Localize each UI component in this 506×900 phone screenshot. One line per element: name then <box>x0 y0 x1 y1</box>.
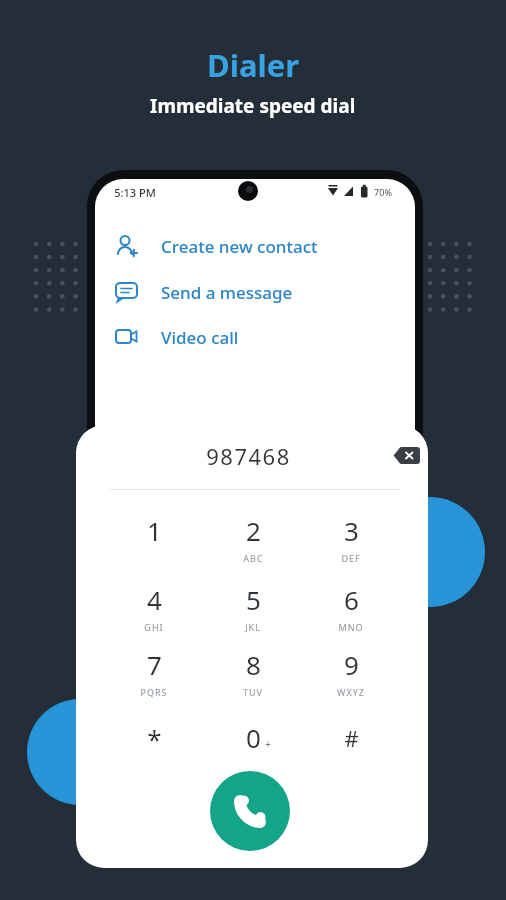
staticText: PQRS <box>140 686 168 698</box>
button[interactable]: Send a message <box>115 272 355 312</box>
staticText: Dialer <box>207 44 300 86</box>
button[interactable] <box>207 638 299 698</box>
staticText: Video call <box>161 326 239 349</box>
staticText: 7 <box>147 647 162 682</box>
button[interactable]: Video call <box>115 317 355 357</box>
staticText: * <box>147 721 162 756</box>
staticText: # <box>344 723 359 753</box>
staticText: Send a message <box>161 281 293 304</box>
staticText: DEF <box>341 552 361 564</box>
button[interactable] <box>305 712 397 772</box>
staticText: 4 <box>147 582 162 617</box>
staticText: Immediate speed dial <box>150 93 356 119</box>
button[interactable] <box>210 771 290 851</box>
staticText: 987468 <box>206 441 291 471</box>
button[interactable] <box>207 573 299 633</box>
button[interactable] <box>108 712 200 772</box>
button[interactable] <box>207 504 299 564</box>
staticText: 70% <box>374 186 392 198</box>
button[interactable] <box>108 573 200 633</box>
button[interactable] <box>305 573 397 633</box>
button[interactable] <box>305 638 397 698</box>
staticText: 0 <box>246 720 261 755</box>
button[interactable] <box>393 446 423 466</box>
button[interactable] <box>108 504 200 564</box>
button[interactable] <box>207 711 299 771</box>
button[interactable] <box>108 638 200 698</box>
staticText: 9 <box>344 647 359 682</box>
staticText: 6 <box>344 582 359 617</box>
staticText: + <box>265 737 271 751</box>
staticText: ABC <box>243 552 264 564</box>
staticText: 1 <box>147 513 162 548</box>
staticText: 5 <box>246 582 261 617</box>
staticText: GHI <box>144 621 164 633</box>
staticText: 2 <box>246 513 261 548</box>
staticText: 8 <box>246 647 261 682</box>
staticText: 3 <box>344 513 359 548</box>
staticText: WXYZ <box>337 686 365 698</box>
staticText: 5:13 PM <box>114 185 156 200</box>
button[interactable]: Create new contact <box>115 226 355 266</box>
staticText: MNO <box>338 621 364 633</box>
staticText: Create new contact <box>161 235 318 258</box>
staticText: JKL <box>245 621 261 633</box>
staticText: TUV <box>243 686 263 698</box>
button[interactable] <box>305 504 397 564</box>
